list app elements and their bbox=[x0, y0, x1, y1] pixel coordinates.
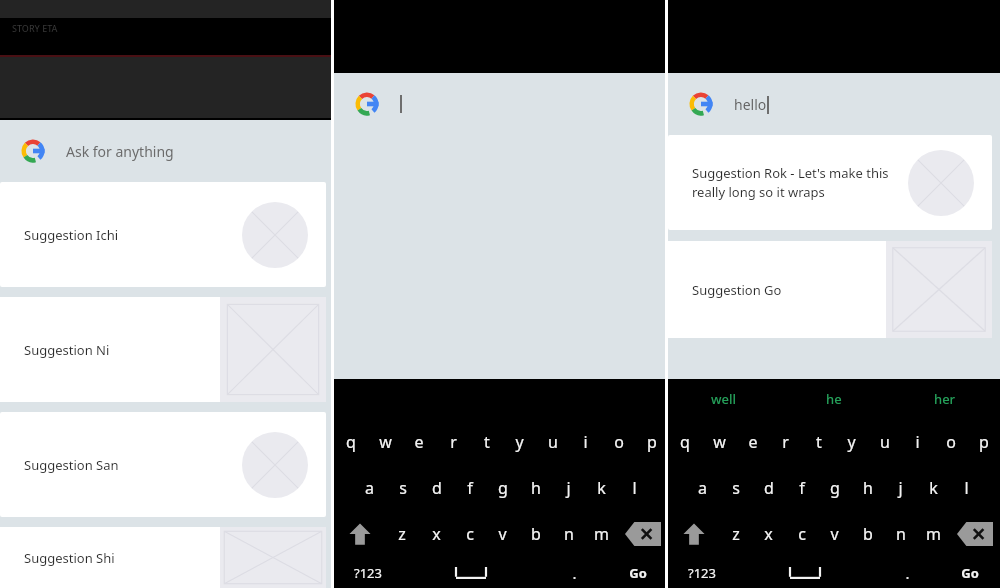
button[interactable]: Space bbox=[735, 557, 874, 588]
button[interactable]: j bbox=[552, 465, 585, 511]
button[interactable]: a bbox=[352, 465, 386, 511]
button[interactable]: ?123 bbox=[668, 557, 735, 588]
button[interactable]: v bbox=[818, 511, 851, 557]
staticText: a bbox=[365, 477, 374, 499]
button[interactable]: p bbox=[967, 419, 1000, 465]
button[interactable]: h bbox=[519, 465, 552, 511]
staticText: d bbox=[764, 477, 774, 499]
staticText: w bbox=[713, 431, 726, 453]
button[interactable]: d bbox=[752, 465, 785, 511]
staticText: j bbox=[566, 477, 571, 499]
button[interactable]: z bbox=[719, 511, 752, 557]
button[interactable]: q bbox=[668, 419, 702, 465]
button[interactable]: z bbox=[385, 511, 419, 557]
button[interactable]: e bbox=[736, 419, 769, 465]
button[interactable]: Space bbox=[401, 557, 541, 588]
button[interactable]: b bbox=[519, 511, 552, 557]
button[interactable]: e bbox=[402, 419, 436, 465]
staticText: s bbox=[399, 477, 407, 499]
button[interactable]: m bbox=[585, 511, 618, 557]
button[interactable]: j bbox=[884, 465, 917, 511]
button[interactable]: x bbox=[752, 511, 785, 557]
button[interactable]: l bbox=[950, 465, 983, 511]
button[interactable]: Suggestion Ichi bbox=[0, 182, 334, 287]
button[interactable]: Suggestion Shi bbox=[0, 527, 334, 588]
button[interactable]: u bbox=[536, 419, 569, 465]
button[interactable]: x bbox=[419, 511, 453, 557]
button[interactable]: p bbox=[635, 419, 668, 465]
button[interactable]: Suggestion Go bbox=[668, 241, 1000, 338]
button[interactable]: t bbox=[802, 419, 835, 465]
button[interactable]: well bbox=[668, 379, 778, 419]
staticText: e bbox=[748, 431, 758, 453]
button[interactable]: g bbox=[486, 465, 519, 511]
button[interactable]: r bbox=[436, 419, 470, 465]
staticText: b bbox=[863, 523, 873, 545]
button[interactable]: hello bbox=[668, 73, 1000, 135]
button[interactable]: her bbox=[889, 379, 1000, 419]
button[interactable]: s bbox=[719, 465, 752, 511]
staticText: k bbox=[929, 477, 938, 499]
button[interactable]: o bbox=[934, 419, 967, 465]
button[interactable]: Backspace bbox=[950, 511, 1000, 557]
button[interactable]: l bbox=[618, 465, 651, 511]
button[interactable]: y bbox=[503, 419, 536, 465]
button[interactable]: Go bbox=[940, 557, 1000, 588]
button[interactable]: n bbox=[552, 511, 585, 557]
staticText: h bbox=[531, 477, 541, 499]
button[interactable]: n bbox=[884, 511, 917, 557]
button[interactable]: Shift bbox=[668, 511, 719, 557]
staticText: k bbox=[597, 477, 606, 499]
button[interactable]: Suggestion Rok - Let's make this really … bbox=[668, 135, 1000, 230]
button[interactable]: Go bbox=[608, 557, 668, 588]
button[interactable]: c bbox=[785, 511, 818, 557]
button[interactable]: d bbox=[420, 465, 453, 511]
staticText: f bbox=[467, 477, 473, 499]
staticText: u bbox=[548, 431, 558, 453]
button[interactable] bbox=[334, 73, 668, 135]
button[interactable]: k bbox=[585, 465, 618, 511]
button[interactable]: r bbox=[769, 419, 802, 465]
button[interactable]: Suggestion Ni bbox=[0, 297, 334, 402]
button[interactable]: w bbox=[368, 419, 402, 465]
staticText: z bbox=[398, 523, 406, 545]
other: Shift bbox=[683, 522, 705, 546]
button[interactable]: i bbox=[901, 419, 934, 465]
button[interactable]: ?123 bbox=[334, 557, 401, 588]
button[interactable]: h bbox=[851, 465, 884, 511]
button[interactable]: s bbox=[386, 465, 420, 511]
staticText: r bbox=[782, 431, 789, 453]
button[interactable]: Shift bbox=[334, 511, 385, 557]
button[interactable]: m bbox=[917, 511, 950, 557]
staticText: l bbox=[632, 477, 637, 499]
staticText: j bbox=[898, 477, 903, 499]
button[interactable]: t bbox=[470, 419, 503, 465]
button[interactable]: o bbox=[602, 419, 635, 465]
button[interactable]: c bbox=[453, 511, 486, 557]
button[interactable]: g bbox=[818, 465, 851, 511]
button[interactable]: f bbox=[453, 465, 486, 511]
button[interactable]: . bbox=[874, 557, 940, 588]
button[interactable]: q bbox=[334, 419, 368, 465]
button[interactable]: a bbox=[686, 465, 719, 511]
button[interactable]: . bbox=[541, 557, 608, 588]
button[interactable]: u bbox=[868, 419, 901, 465]
staticText: STORY ETA bbox=[12, 22, 58, 34]
button[interactable]: y bbox=[835, 419, 868, 465]
button[interactable]: Suggestion San bbox=[0, 412, 334, 517]
staticText: he bbox=[826, 390, 842, 408]
button[interactable]: b bbox=[851, 511, 884, 557]
staticText: well bbox=[711, 390, 736, 408]
staticText: Suggestion Ni bbox=[24, 341, 110, 359]
button[interactable]: i bbox=[569, 419, 602, 465]
button[interactable]: k bbox=[917, 465, 950, 511]
staticText: her bbox=[934, 390, 956, 408]
staticText: l bbox=[964, 477, 969, 499]
button[interactable]: f bbox=[785, 465, 818, 511]
button[interactable]: he bbox=[778, 379, 889, 419]
staticText: x bbox=[764, 523, 773, 545]
button[interactable]: v bbox=[486, 511, 519, 557]
button[interactable]: Backspace bbox=[618, 511, 668, 557]
button[interactable]: Ask for anything bbox=[0, 120, 334, 182]
button[interactable]: w bbox=[702, 419, 736, 465]
